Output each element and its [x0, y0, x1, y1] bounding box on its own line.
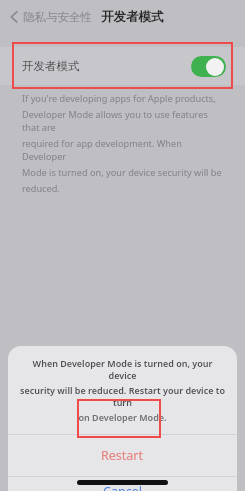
- staticText: on Developer Mode.: [78, 411, 167, 423]
- staticText: security will be reduced. Restart your d…: [20, 384, 225, 408]
- staticText: Developer Mode allows you to use feature…: [22, 108, 227, 134]
- staticText: If you're developing apps for Apple prod…: [22, 92, 216, 105]
- staticText: 开发者模式: [101, 9, 164, 25]
- staticText: required for app development. When Devel…: [22, 137, 227, 163]
- staticText: Mode is turned on, your device security …: [22, 166, 222, 179]
- button[interactable]: 开发者模式: [0, 47, 245, 85]
- staticText: When Developer Mode is turned on, your d…: [20, 357, 225, 381]
- staticText: 隐私与安全性: [23, 10, 92, 24]
- staticText: 开发者模式: [22, 59, 80, 73]
- button[interactable]: Back to 隐私与安全性: [6, 6, 96, 28]
- staticText: reduced.: [22, 182, 60, 195]
- button[interactable]: Developer Mode toggle, on: [191, 56, 226, 77]
- button[interactable]: Cancel: [8, 477, 237, 491]
- button[interactable]: Restart: [8, 435, 237, 476]
- staticText: Cancel: [103, 483, 142, 491]
- staticText: Restart: [101, 447, 144, 464]
